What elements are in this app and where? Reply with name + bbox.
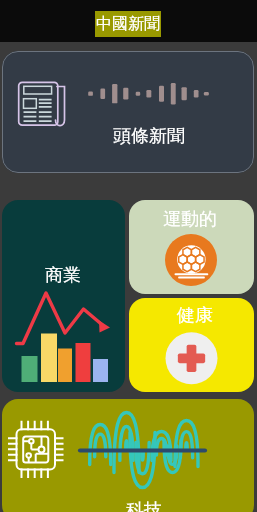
staticText: 頭條新聞 [113,125,185,148]
button[interactable]: 運動的 [129,200,254,294]
staticText: 中國新聞 [96,14,160,34]
button[interactable]: 頭條新聞 [2,51,254,173]
staticText: 運動的 [163,208,217,231]
button[interactable]: 商業 [2,200,125,392]
staticText: 健康 [177,304,213,327]
button[interactable]: 科技 [2,399,254,512]
staticText: 商業 [45,264,81,287]
staticText: 科技 [126,499,162,512]
button[interactable]: 健康 [129,298,254,392]
button[interactable]: 中國新聞 [95,11,161,37]
